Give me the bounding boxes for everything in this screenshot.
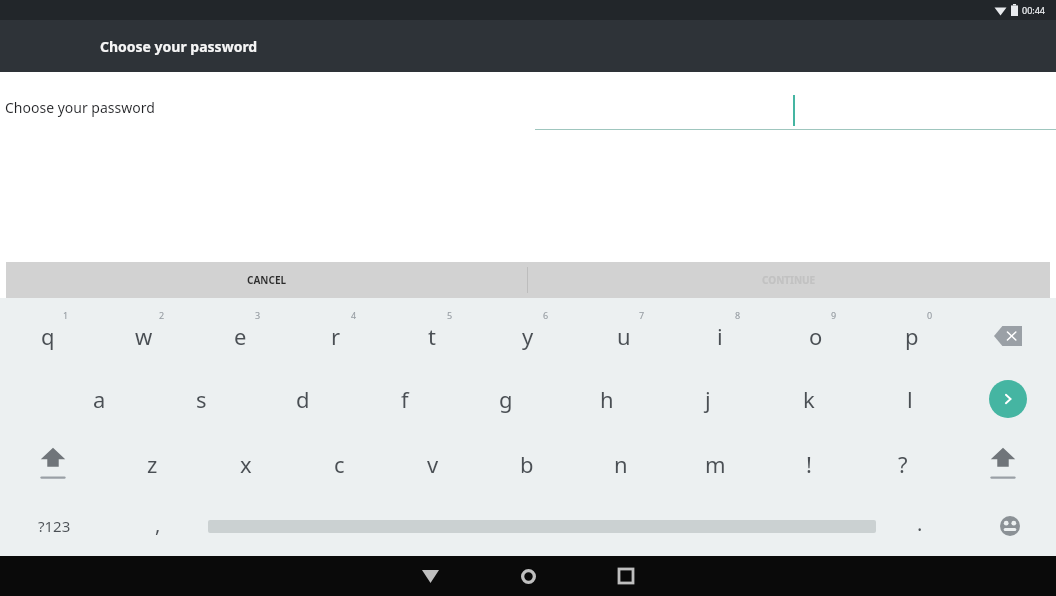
button[interactable]: k <box>758 366 859 431</box>
staticText: 00:44 <box>1022 4 1046 16</box>
staticText: c <box>334 449 345 479</box>
button[interactable]: . <box>876 496 964 556</box>
button[interactable]: m <box>668 431 762 496</box>
button[interactable]: Back <box>395 556 465 596</box>
button[interactable]: e <box>192 298 288 366</box>
staticText: 6 <box>543 309 549 321</box>
staticText: , <box>155 511 161 538</box>
button[interactable]: z <box>106 431 199 496</box>
staticText: 0 <box>927 309 933 321</box>
button[interactable]: l <box>859 366 960 431</box>
button[interactable]: y <box>480 298 576 366</box>
button[interactable]: o <box>768 298 864 366</box>
staticText: d <box>296 384 310 414</box>
button[interactable]: w <box>96 298 192 366</box>
staticText: Choose your password <box>100 37 258 56</box>
button[interactable]: ?123 <box>0 496 108 556</box>
staticText: v <box>427 449 439 479</box>
staticText: h <box>600 384 614 414</box>
staticText: ! <box>806 449 812 479</box>
button[interactable]: Home <box>493 556 563 596</box>
button[interactable]: q <box>0 298 96 366</box>
staticText: CANCEL <box>247 273 287 287</box>
button[interactable]: f <box>354 366 455 431</box>
staticText: p <box>905 321 919 351</box>
button[interactable]: i <box>672 298 768 366</box>
button[interactable]: Emoji <box>964 496 1056 556</box>
button[interactable]: Shift <box>950 431 1056 496</box>
staticText: n <box>614 449 628 479</box>
staticText: a <box>93 384 106 414</box>
staticText: g <box>499 384 513 414</box>
staticText: k <box>803 384 815 414</box>
button[interactable]: b <box>480 431 574 496</box>
staticText: ? <box>898 449 908 479</box>
staticText: l <box>907 384 913 414</box>
button[interactable]: CANCEL <box>6 262 527 298</box>
button[interactable]: g <box>455 366 556 431</box>
staticText: u <box>617 321 631 351</box>
staticText: q <box>41 321 55 351</box>
staticText: y <box>522 321 534 351</box>
staticText: 7 <box>639 309 645 321</box>
button[interactable]: r <box>288 298 384 366</box>
button[interactable]: Recents <box>591 556 661 596</box>
button[interactable]: a <box>48 366 150 431</box>
button[interactable]: Space <box>208 496 876 556</box>
staticText: Choose your password <box>5 98 155 117</box>
staticText: w <box>135 321 153 351</box>
button[interactable]: Backspace <box>960 298 1056 366</box>
staticText: e <box>234 321 247 351</box>
button[interactable]: d <box>252 366 354 431</box>
staticText: s <box>196 384 207 414</box>
button[interactable]: h <box>556 366 657 431</box>
staticText: f <box>401 384 409 414</box>
button[interactable]: u <box>576 298 672 366</box>
button[interactable]: t <box>384 298 480 366</box>
button[interactable]: , <box>108 496 208 556</box>
staticText: o <box>809 321 823 351</box>
button[interactable]: Enter <box>960 366 1056 431</box>
staticText: 5 <box>447 309 453 321</box>
staticText: 1 <box>63 309 69 321</box>
button[interactable]: ! <box>762 431 856 496</box>
button[interactable]: n <box>574 431 668 496</box>
staticText: z <box>147 449 158 479</box>
staticText: x <box>240 449 252 479</box>
staticText: i <box>717 321 723 351</box>
staticText: 3 <box>255 309 261 321</box>
button[interactable]: p <box>864 298 960 366</box>
staticText: t <box>428 321 436 351</box>
staticText: r <box>331 321 341 351</box>
button[interactable]: x <box>199 431 292 496</box>
button[interactable]: s <box>150 366 252 431</box>
button[interactable]: v <box>386 431 480 496</box>
staticText: m <box>705 449 726 479</box>
staticText: . <box>917 510 923 537</box>
staticText: CONTINUE <box>762 273 816 287</box>
staticText: 4 <box>351 309 357 321</box>
button[interactable]: ? <box>856 431 950 496</box>
staticText: ?123 <box>38 516 71 536</box>
button[interactable]: j <box>657 366 758 431</box>
staticText: 2 <box>159 309 165 321</box>
staticText: j <box>705 384 711 414</box>
staticText: b <box>520 449 534 479</box>
staticText: 8 <box>735 309 741 321</box>
button[interactable]: c <box>292 431 386 496</box>
staticText: 9 <box>831 309 837 321</box>
button[interactable]: Shift <box>0 431 106 496</box>
